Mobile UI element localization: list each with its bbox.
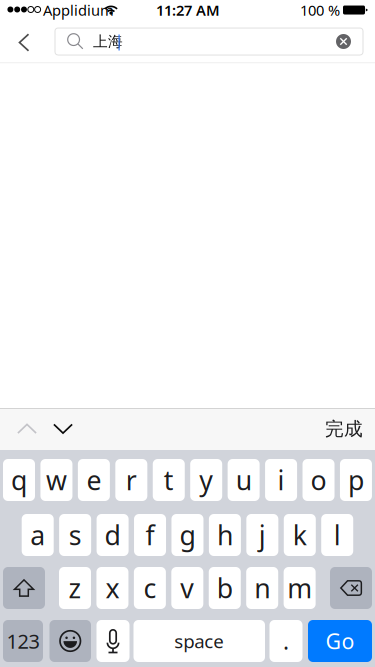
button[interactable]: s	[59, 514, 91, 556]
button[interactable]: Delete	[330, 567, 372, 609]
button[interactable]: r	[115, 459, 147, 501]
button[interactable]: Next field	[53, 423, 73, 434]
staticText: v	[180, 570, 194, 606]
staticText: f	[145, 517, 154, 553]
button[interactable]: i	[265, 459, 297, 501]
staticText: 100 %	[300, 0, 340, 20]
staticText: l	[334, 517, 341, 553]
staticText: b	[217, 570, 233, 606]
button[interactable]: Back	[8, 31, 40, 53]
staticText: space	[174, 629, 224, 653]
button[interactable]: 123	[3, 620, 43, 662]
staticText: 123	[6, 628, 39, 654]
button[interactable]: c	[134, 567, 166, 609]
staticText: k	[293, 517, 307, 553]
staticText: n	[254, 570, 270, 606]
staticText: g	[179, 517, 195, 553]
staticText: e	[86, 462, 101, 498]
staticText: s	[69, 517, 82, 553]
button[interactable]: space	[133, 620, 265, 662]
staticText: Go	[325, 627, 354, 655]
button[interactable]: .	[269, 620, 302, 662]
button[interactable]: j	[246, 514, 278, 556]
staticText: 上海	[93, 32, 123, 50]
button[interactable]: o	[302, 459, 334, 501]
button[interactable]: y	[190, 459, 222, 501]
staticText: i	[278, 462, 285, 498]
button[interactable]: q	[3, 459, 35, 501]
button[interactable]: k	[284, 514, 316, 556]
button[interactable]: Clear text	[336, 34, 351, 49]
staticText: x	[105, 570, 119, 606]
staticText: Applidium	[43, 0, 114, 20]
button[interactable]: x	[96, 567, 128, 609]
staticText: y	[199, 462, 213, 498]
button[interactable]: Go	[308, 620, 372, 662]
staticText: 完成	[325, 417, 363, 440]
button[interactable]: v	[171, 567, 203, 609]
staticText: 11:27 AM	[156, 0, 220, 20]
button[interactable]: Previous field	[17, 423, 37, 434]
staticText: t	[164, 462, 174, 498]
button[interactable]: w	[40, 459, 72, 501]
button[interactable]: 完成	[320, 418, 368, 440]
staticText: h	[217, 517, 233, 553]
button[interactable]: u	[228, 459, 260, 501]
button[interactable]: l	[321, 514, 353, 556]
button[interactable]: e	[78, 459, 110, 501]
staticText: u	[236, 462, 252, 498]
button[interactable]: t	[153, 459, 185, 501]
staticText: r	[126, 462, 137, 498]
button[interactable]: Emoji	[49, 620, 91, 662]
button[interactable]: h	[209, 514, 241, 556]
button[interactable]: a	[22, 514, 54, 556]
staticText: m	[287, 570, 312, 606]
button[interactable]: Dictation	[96, 620, 129, 662]
button[interactable]: m	[284, 567, 316, 609]
button[interactable]: g	[171, 514, 203, 556]
button[interactable]: Shift	[3, 567, 45, 609]
button[interactable]: b	[209, 567, 241, 609]
button[interactable]: z	[59, 567, 91, 609]
button[interactable]: d	[97, 514, 129, 556]
staticText: w	[46, 462, 67, 498]
staticText: c	[143, 570, 156, 606]
staticText: q	[11, 462, 27, 498]
button[interactable]: f	[134, 514, 166, 556]
staticText: o	[310, 462, 326, 498]
staticText: d	[105, 517, 121, 553]
staticText: .	[283, 626, 289, 656]
staticText: p	[348, 462, 364, 498]
staticText: z	[68, 570, 81, 606]
button[interactable]: p	[340, 459, 372, 501]
staticText: j	[259, 517, 266, 553]
staticText: a	[30, 517, 45, 553]
button[interactable]: n	[246, 567, 278, 609]
